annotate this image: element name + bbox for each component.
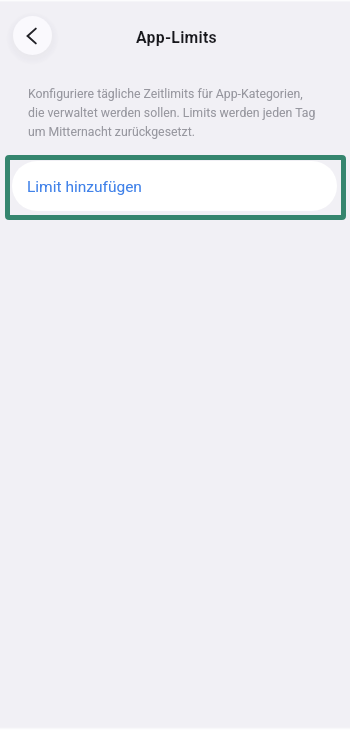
button[interactable]: Back xyxy=(13,16,52,55)
staticText: App-Limits xyxy=(136,28,217,47)
button[interactable]: Limit hinzufügen xyxy=(12,161,337,211)
staticText: Konfiguriere tägliche Zeitlimits für App… xyxy=(28,87,320,139)
staticText: Limit hinzufügen xyxy=(27,178,142,196)
